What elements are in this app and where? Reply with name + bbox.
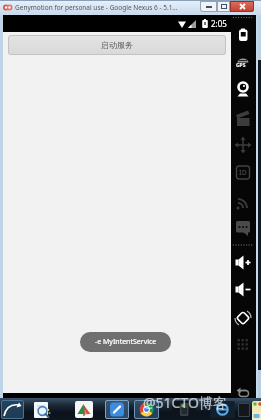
staticText: ID	[239, 168, 247, 178]
staticText: GPS	[236, 62, 246, 69]
button[interactable]	[105, 400, 129, 419]
button[interactable]	[210, 401, 235, 418]
button[interactable]	[230, 1, 254, 12]
staticText: Genymotion for personal use - Google Nex…	[15, 3, 195, 12]
button[interactable]	[1, 400, 24, 419]
button[interactable]	[134, 400, 159, 419]
button[interactable]	[238, 403, 250, 417]
staticText: -e MyIntentService	[95, 337, 157, 347]
button[interactable]	[31, 400, 54, 419]
button[interactable]	[75, 401, 93, 418]
button[interactable]	[217, 1, 230, 12]
button[interactable]	[252, 401, 261, 420]
button[interactable]: 启动服务	[8, 35, 226, 55]
button[interactable]	[172, 401, 196, 418]
staticText: 2:05	[211, 18, 227, 29]
staticText: @51CTO博客	[143, 393, 227, 412]
button[interactable]	[200, 1, 217, 12]
staticText: 启动服务	[101, 40, 133, 50]
